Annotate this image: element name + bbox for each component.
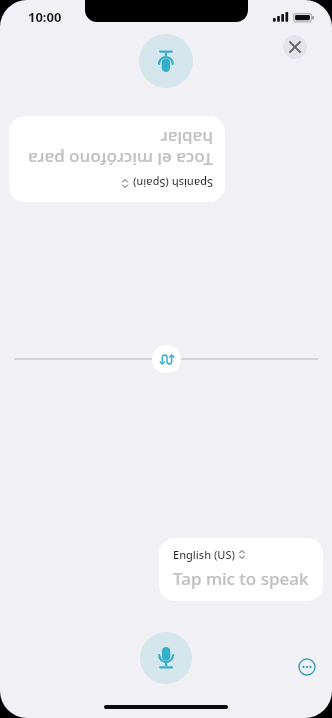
staticText: 10:00	[28, 8, 62, 26]
staticText: English (US)	[173, 547, 235, 562]
button[interactable]: Swap languages	[152, 345, 181, 373]
staticText: Tap mic to speak	[173, 567, 309, 590]
button[interactable]: More options	[294, 654, 319, 679]
staticText: Spanish (Spain)	[132, 176, 213, 191]
button[interactable]: Spanish microphone	[139, 34, 193, 88]
button[interactable]: English (US)	[159, 538, 323, 601]
button[interactable]: Spanish (Spain)	[9, 116, 225, 202]
button[interactable]: Close	[283, 35, 307, 59]
staticText: Toca el micrófono para hablar	[21, 127, 213, 171]
button[interactable]: English microphone	[140, 632, 192, 684]
